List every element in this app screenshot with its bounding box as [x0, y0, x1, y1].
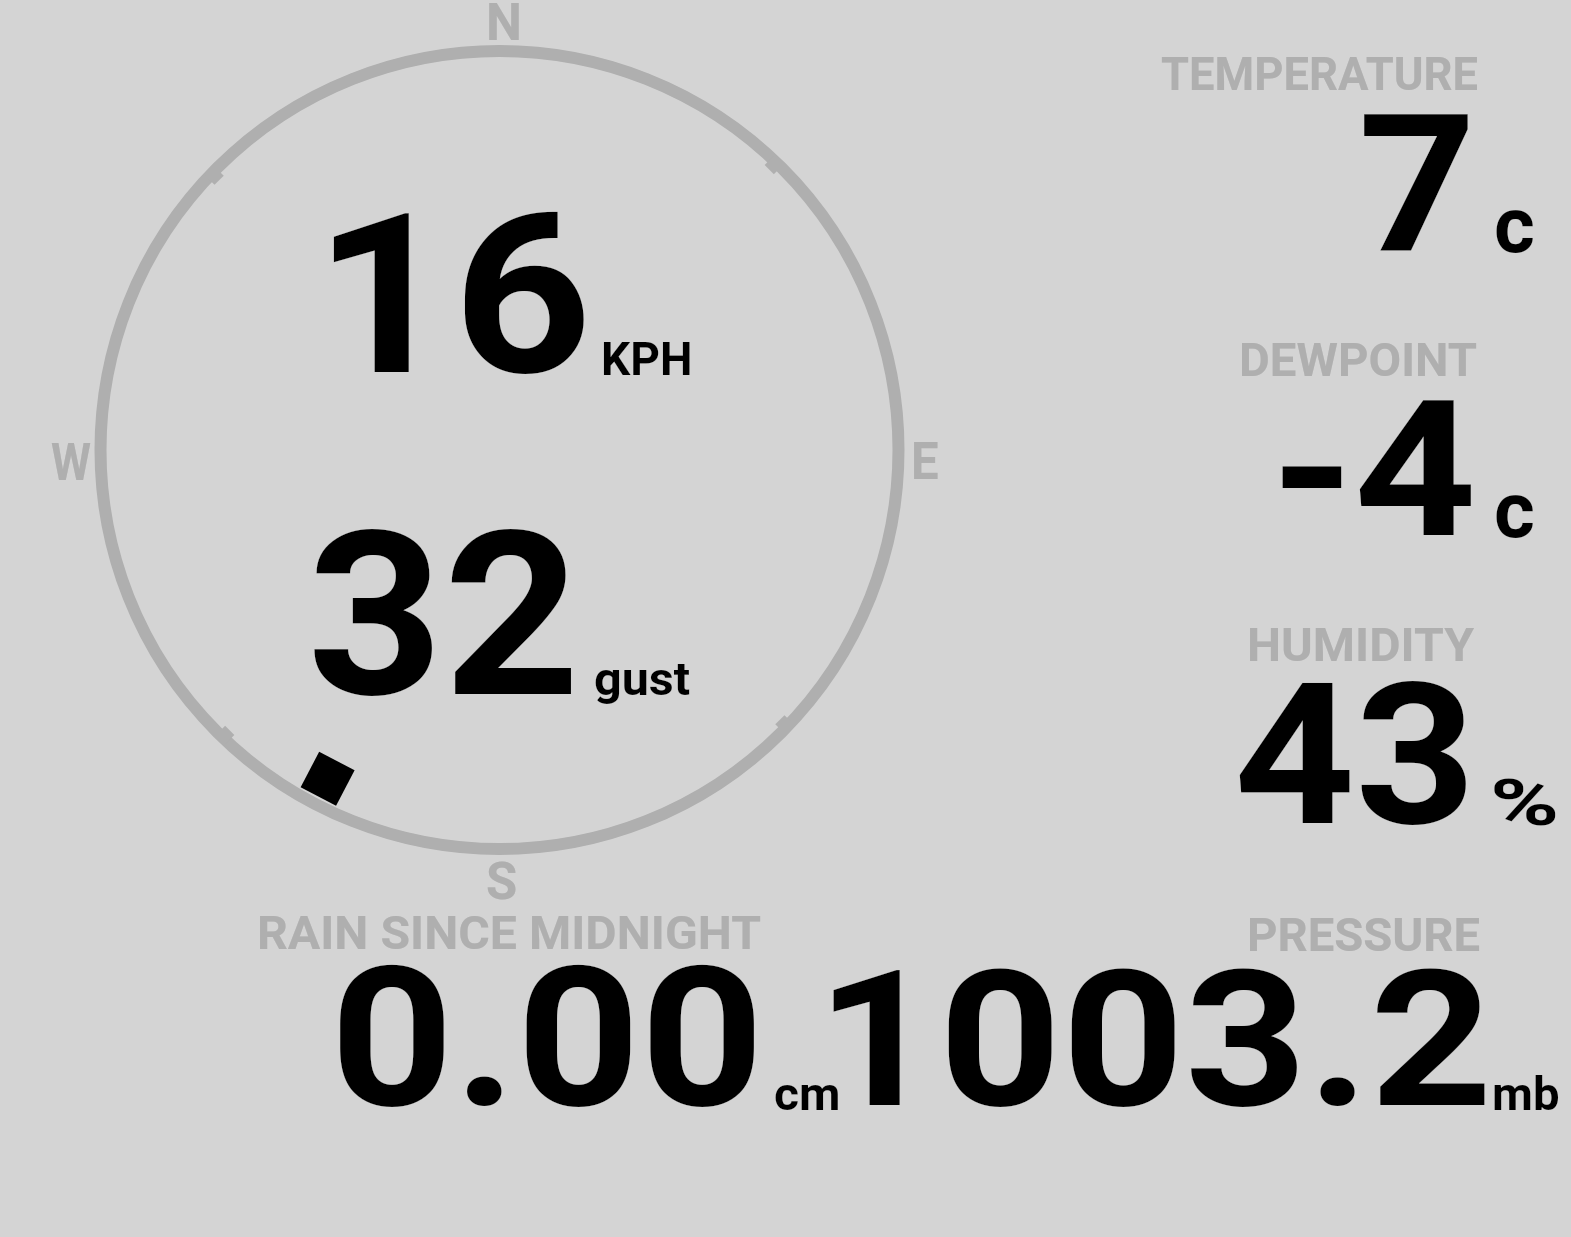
button[interactable]: Pressure 1003.2 mb	[860, 900, 1560, 1120]
button[interactable]: Rain since midnight 0.00 cm	[240, 900, 850, 1120]
button[interactable]: Temperature 7 C	[1140, 40, 1571, 275]
button[interactable]: Humidity 43 percent	[1140, 610, 1571, 845]
button[interactable]: Dewpoint -4 C	[1140, 325, 1571, 560]
button[interactable]: Wind direction dial, 16 KPH, gust 32	[100, 51, 900, 849]
